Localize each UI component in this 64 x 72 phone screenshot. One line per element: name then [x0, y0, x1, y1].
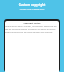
staticText: Protect your original work	[4, 8, 60, 11]
staticText: Copyright Notice	[5, 22, 59, 25]
staticText: Lorem ipsum dolor sit amet, consectetur …	[5, 25, 59, 34]
staticText: Custom copyright	[4, 3, 60, 7]
